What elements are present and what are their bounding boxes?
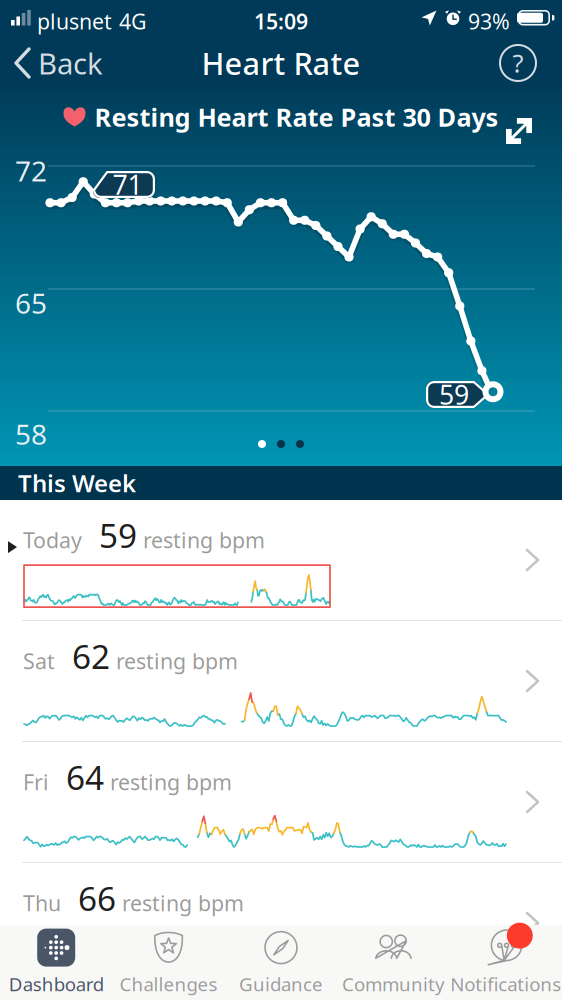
button[interactable]: Fri [0,742,562,862]
staticText: plusnet [37,7,112,35]
button[interactable]: Sat [0,621,562,741]
staticText: 64 [66,755,104,799]
button[interactable]: Dashboard [0,929,112,996]
staticText: Community [342,972,445,996]
staticText: resting bpm [143,526,265,554]
staticText: resting bpm [110,768,232,796]
button[interactable]: Notifications [450,929,562,996]
button[interactable]: Today [0,500,562,620]
button[interactable]: Community [337,929,450,996]
button[interactable]: Back [0,37,103,88]
staticText: Today [23,526,82,554]
staticText: 62 [72,634,110,678]
staticText: This Week [18,467,136,499]
staticText: resting bpm [116,647,238,675]
staticText: Fri [23,768,49,796]
staticText: 66 [78,876,116,920]
staticText: Challenges [120,972,218,996]
staticText: 65 [15,284,47,321]
staticText: 59 [439,377,469,412]
button[interactable]: Challenges [112,929,225,996]
staticText: 93% [468,7,510,35]
staticText: Resting Heart Rate Past 30 Days [94,100,498,134]
staticText: Back [38,43,103,82]
staticText: ? [512,46,523,80]
button[interactable]: Help [500,45,562,81]
button[interactable]: Guidance [225,929,337,996]
staticText: resting bpm [122,889,244,917]
staticText: Dashboard [9,972,104,996]
staticText: Heart Rate [201,43,360,83]
staticText: 58 [15,415,47,453]
staticText: 72 [15,152,47,189]
button[interactable]: Thu [0,863,562,983]
staticText: Guidance [239,972,323,996]
staticText: 71 [112,167,142,202]
button[interactable]: Expand chart [496,108,542,154]
staticText: 59 [99,513,137,557]
staticText: Sat [23,647,55,675]
staticText: Thu [23,889,61,917]
staticText: Notifications [450,972,561,996]
staticText: 4G [119,7,147,35]
staticText: 15:09 [254,7,308,35]
